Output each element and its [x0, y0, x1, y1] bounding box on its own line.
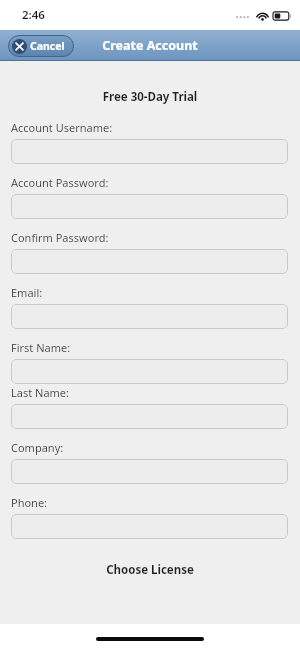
- button[interactable]: Account Password:: [11, 194, 288, 219]
- staticText: Company:: [11, 440, 64, 455]
- staticText: Free 30-Day Trial: [0, 89, 300, 105]
- staticText: Phone:: [11, 495, 48, 510]
- button[interactable]: Phone:: [11, 514, 288, 539]
- button[interactable]: Company:: [11, 459, 288, 484]
- staticText: Confirm Password:: [11, 230, 109, 245]
- staticText: First Name:: [11, 340, 71, 355]
- staticText: Cancel: [30, 39, 65, 53]
- button[interactable]: Account Username:: [11, 139, 288, 164]
- staticText: Email:: [11, 285, 43, 300]
- staticText: Choose License: [0, 562, 300, 578]
- staticText: Create Account: [102, 37, 198, 54]
- button[interactable]: First Name:: [11, 359, 288, 384]
- button[interactable]: Confirm Password:: [11, 249, 288, 274]
- button[interactable]: Email:: [11, 304, 288, 329]
- staticText: 2:46: [22, 7, 45, 23]
- button[interactable]: Last Name:: [11, 404, 288, 429]
- staticText: Account Password:: [11, 175, 109, 190]
- staticText: Account Username:: [11, 120, 113, 135]
- button[interactable]: Cancel: [8, 35, 74, 57]
- staticText: Last Name:: [11, 385, 70, 400]
